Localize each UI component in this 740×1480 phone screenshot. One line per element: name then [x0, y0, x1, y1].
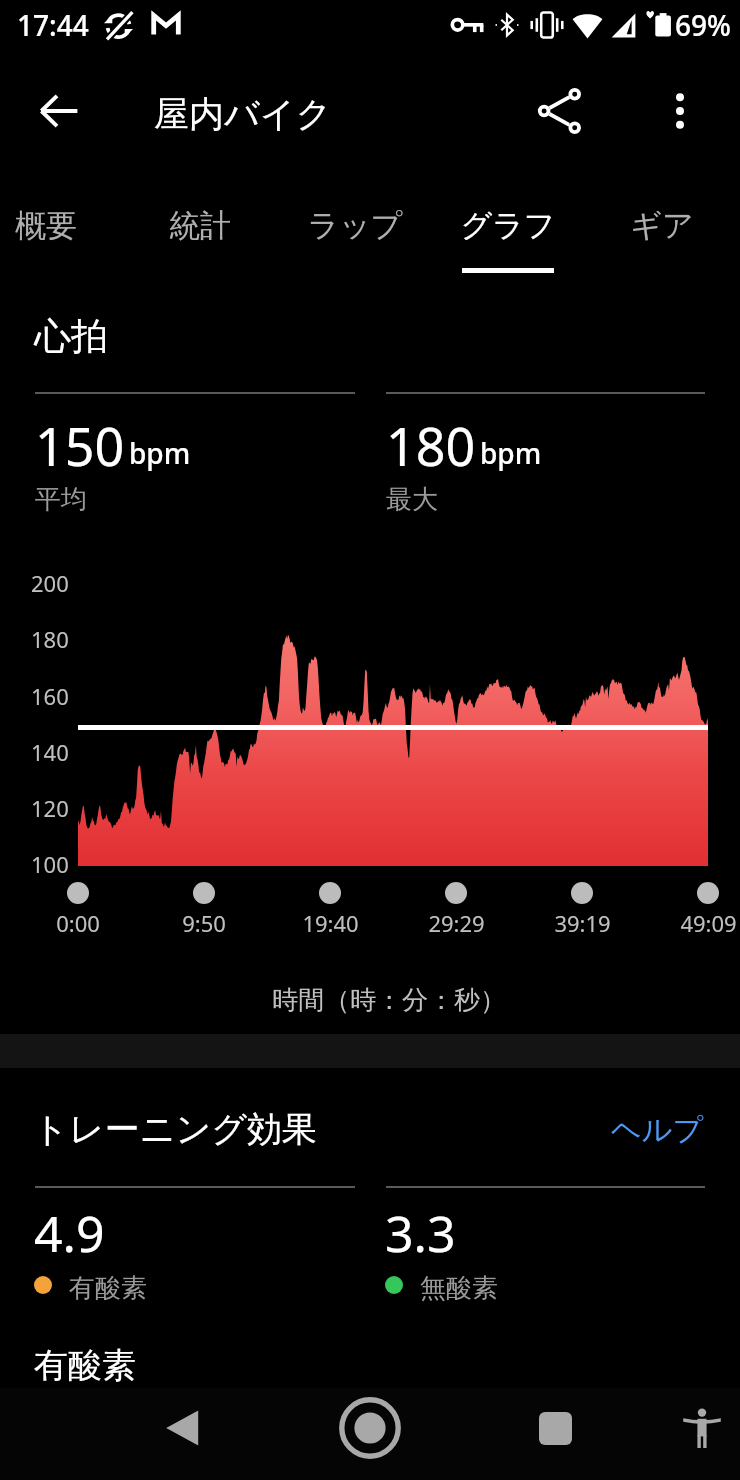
button[interactable]: Share	[524, 75, 596, 147]
staticText: bpm	[480, 434, 542, 472]
staticText: 180	[31, 624, 69, 654]
button[interactable]: Home	[334, 1392, 406, 1464]
staticText: ヘルプ	[611, 1111, 704, 1149]
button[interactable]: Recent apps	[519, 1392, 591, 1464]
staticText: 49:09	[680, 908, 737, 938]
staticText: 有酸素	[34, 1344, 136, 1387]
staticText: 4.9	[34, 1199, 105, 1267]
staticText: 有酸素	[69, 1272, 147, 1305]
staticText: bpm	[129, 434, 191, 472]
staticText: 平均	[35, 483, 87, 516]
button[interactable]: Back	[23, 75, 95, 147]
button[interactable]: ギア	[585, 165, 739, 285]
staticText: グラフ	[460, 206, 556, 245]
staticText: ラップ	[307, 206, 403, 245]
staticText: 100	[31, 849, 69, 879]
staticText: 17:44	[17, 6, 89, 44]
button[interactable]: 概要	[0, 165, 123, 285]
staticText: トレーニング効果	[33, 1107, 318, 1151]
staticText: 160	[31, 681, 69, 711]
staticText: 200	[31, 568, 69, 598]
staticText: 3.3	[385, 1199, 456, 1267]
staticText: 120	[31, 793, 69, 823]
staticText: 統計	[169, 206, 231, 245]
staticText: 9:50	[182, 908, 226, 938]
staticText: 心拍	[34, 313, 108, 360]
button[interactable]: Accessibility	[666, 1392, 738, 1464]
staticText: 29:29	[428, 908, 485, 938]
button[interactable]: ヘルプ	[608, 1102, 706, 1158]
button[interactable]: More options	[644, 75, 716, 147]
staticText: 140	[31, 737, 69, 767]
staticText: ギア	[630, 206, 694, 245]
staticText: 69%	[675, 6, 731, 44]
staticText: 19:40	[302, 908, 359, 938]
staticText: 最大	[386, 483, 438, 516]
staticText: 概要	[15, 206, 77, 245]
staticText: 時間（時：分：秒）	[272, 984, 506, 1017]
staticText: 39:19	[554, 908, 611, 938]
button[interactable]: ラップ	[278, 165, 432, 285]
staticText: 無酸素	[420, 1272, 498, 1305]
staticText: 180	[386, 410, 476, 481]
button[interactable]: Back	[147, 1392, 219, 1464]
button[interactable]: 統計	[123, 165, 277, 285]
button[interactable]: グラフ	[431, 165, 585, 285]
staticText: 0:00	[56, 908, 100, 938]
staticText: 150	[35, 410, 125, 481]
staticText: 屋内バイク	[154, 92, 332, 136]
